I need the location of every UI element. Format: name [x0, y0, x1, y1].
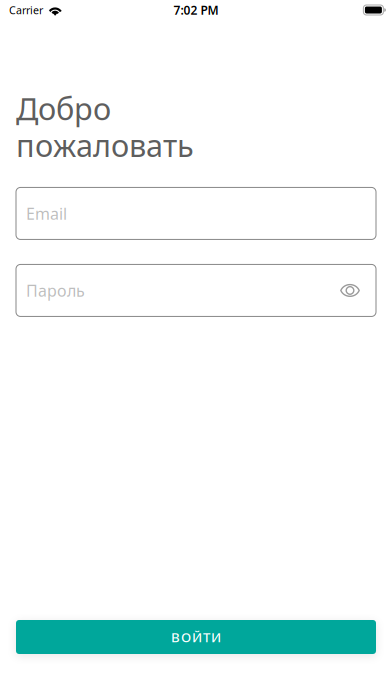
staticText: Добро пожаловать — [16, 88, 194, 165]
button[interactable]: Email — [16, 187, 376, 239]
staticText: ВОЙТИ — [171, 628, 221, 646]
staticText: Email — [26, 203, 67, 224]
staticText: Carrier — [9, 3, 43, 17]
staticText: Пароль — [26, 280, 85, 301]
staticText: 7:02 PM — [173, 2, 218, 18]
button[interactable]: Show password — [335, 275, 365, 305]
button[interactable]: ВОЙТИ — [16, 620, 376, 654]
button[interactable]: Пароль — [16, 264, 376, 316]
